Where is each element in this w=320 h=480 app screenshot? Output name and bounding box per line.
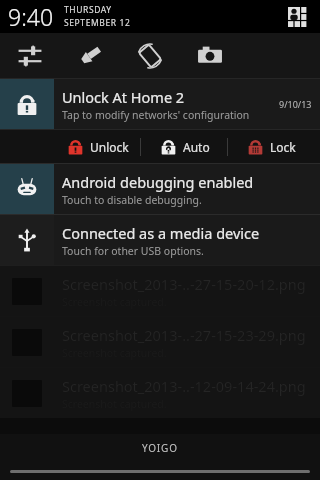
staticText: Lock xyxy=(270,139,296,155)
button[interactable]: Unlock xyxy=(54,130,140,163)
button[interactable]: Connected as a media device xyxy=(0,215,320,265)
button[interactable]: Auto xyxy=(141,130,227,163)
staticText: THURSDAY xyxy=(64,4,112,16)
button[interactable]: Screenshot_2013-..-27-15-23-29.png xyxy=(0,317,320,367)
button[interactable]: Auto rotate xyxy=(120,33,180,78)
button[interactable]: Screenshot_2013-..-12-09-14-24.png xyxy=(0,368,320,418)
staticText: 9:40 xyxy=(8,1,54,32)
staticText: Auto xyxy=(183,139,210,155)
button[interactable]: Camera xyxy=(180,33,240,78)
staticText: Touch to disable debugging. xyxy=(62,193,202,207)
staticText: Screenshot_2013-..-12-09-14-24.png xyxy=(62,376,306,396)
staticText: SEPTEMBER 12 xyxy=(64,17,131,29)
button[interactable]: Screenshot_2013-..-27-15-20-12.png xyxy=(0,266,320,316)
button[interactable]: Quick settings xyxy=(284,3,312,31)
staticText: Unlock xyxy=(90,139,129,155)
staticText: Tap to modify networks' configuration xyxy=(62,108,250,122)
button[interactable]: Lock xyxy=(228,130,314,163)
staticText: Touch for other USB options. xyxy=(62,244,204,258)
staticText: Unlock At Home 2 xyxy=(62,87,185,107)
button[interactable]: Unlock At Home 2 xyxy=(0,79,320,129)
staticText: Connected as a media device xyxy=(62,223,260,243)
button[interactable]: Close notification shade xyxy=(0,462,320,480)
button[interactable]: Android debugging enabled xyxy=(0,164,320,214)
button[interactable]: Flashlight xyxy=(60,33,120,78)
staticText: 9/10/13 xyxy=(279,98,312,110)
staticText: Screenshot_2013-..-27-15-23-29.png xyxy=(62,325,306,345)
button[interactable]: Settings xyxy=(0,33,60,78)
staticText: Screenshot_2013-..-27-15-20-12.png xyxy=(62,274,306,294)
staticText: Android debugging enabled xyxy=(62,172,254,192)
staticText: YOIGO xyxy=(142,441,178,455)
